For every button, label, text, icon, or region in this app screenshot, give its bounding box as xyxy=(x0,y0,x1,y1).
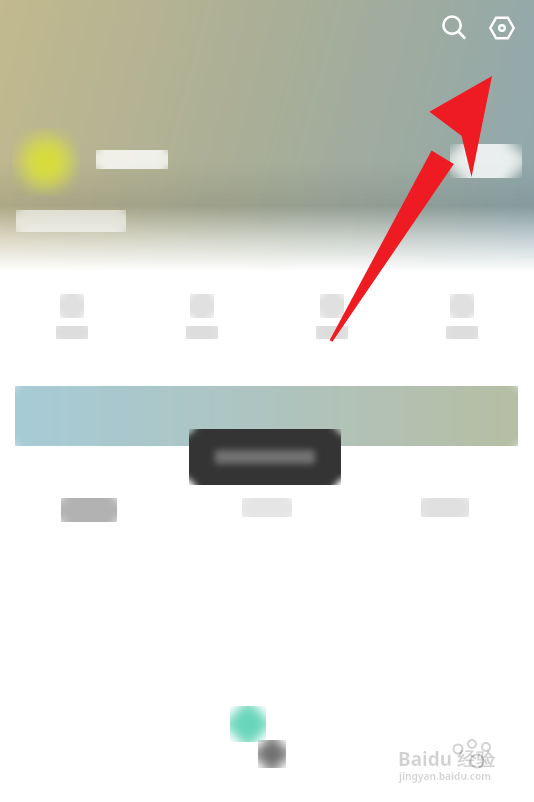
button[interactable]: Search xyxy=(432,6,476,50)
button[interactable]: Quick action xyxy=(274,284,390,360)
button[interactable]: List item xyxy=(0,498,178,548)
button[interactable]: Header action button xyxy=(450,144,522,178)
button[interactable]: List item xyxy=(178,498,356,548)
button[interactable]: Settings xyxy=(480,6,524,50)
staticText: Baidu 经验 xyxy=(398,746,495,772)
button[interactable]: Quick action xyxy=(144,284,260,360)
button[interactable]: Profile avatar xyxy=(12,128,80,196)
button[interactable]: Quick action xyxy=(404,284,520,360)
staticText: jingyan.baidu.com xyxy=(399,769,491,783)
button[interactable]: Quick action xyxy=(14,284,130,360)
button[interactable]: List item xyxy=(356,498,534,548)
button[interactable]: Promotion banner xyxy=(15,386,518,446)
